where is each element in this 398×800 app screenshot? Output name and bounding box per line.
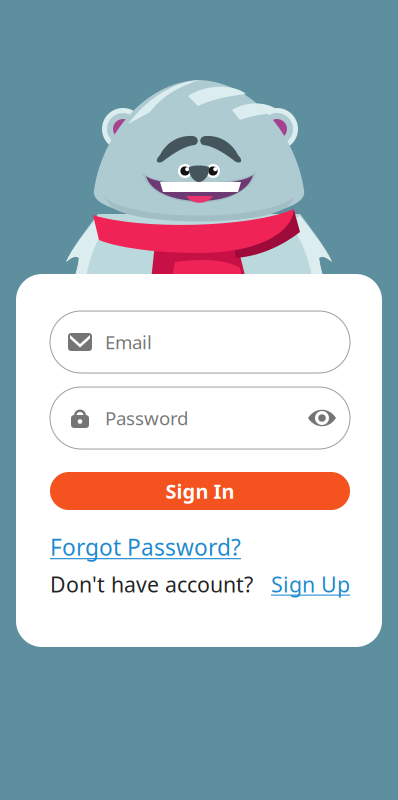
staticText: Email — [105, 330, 152, 354]
button[interactable]: Forgot Password? — [50, 532, 241, 562]
staticText: Forgot Password? — [50, 532, 241, 562]
staticText: Sign In — [165, 478, 234, 504]
staticText: Don't have account? — [50, 570, 253, 598]
button[interactable]: Sign Up — [271, 570, 350, 598]
staticText: Password — [105, 406, 188, 430]
button[interactable]: Show password — [307, 403, 337, 433]
button[interactable]: Sign In — [50, 472, 350, 510]
staticText: Sign Up — [271, 570, 350, 598]
